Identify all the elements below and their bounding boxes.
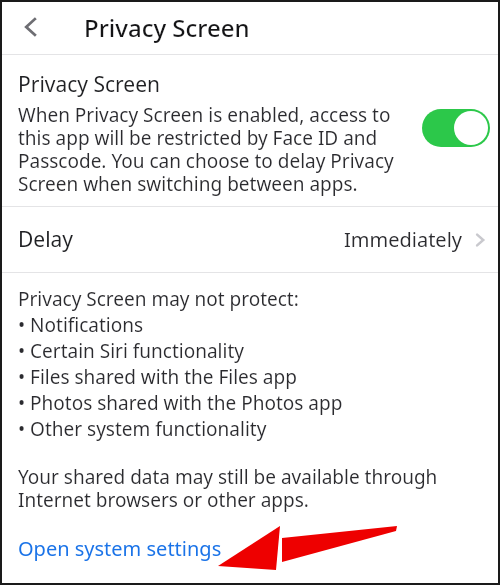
staticText: Open system settings	[18, 535, 222, 562]
staticText: • Photos shared with the Photos app	[18, 390, 343, 416]
button[interactable]: Privacy Screen toggle, on	[422, 109, 490, 147]
staticText: • Other system functionality	[18, 416, 267, 442]
button[interactable]: Open system settings	[18, 535, 222, 562]
staticText: Privacy Screen may not protect:	[18, 286, 299, 312]
staticText: • Certain Siri functionality	[18, 338, 244, 364]
button[interactable]: Back	[12, 8, 50, 46]
button[interactable]: Delay	[0, 207, 500, 272]
button[interactable]: Privacy Screen	[0, 70, 500, 197]
staticText: Your shared data may still be available …	[18, 464, 486, 513]
staticText: Privacy Screen	[18, 70, 161, 99]
staticText: Delay	[18, 225, 74, 254]
staticText: • Files shared with the Files app	[18, 364, 297, 390]
staticText: When Privacy Screen is enabled, access t…	[18, 102, 414, 197]
staticText: Immediately	[344, 226, 462, 253]
staticText: Privacy Screen	[84, 11, 250, 44]
staticText: • Notifications	[18, 312, 144, 338]
